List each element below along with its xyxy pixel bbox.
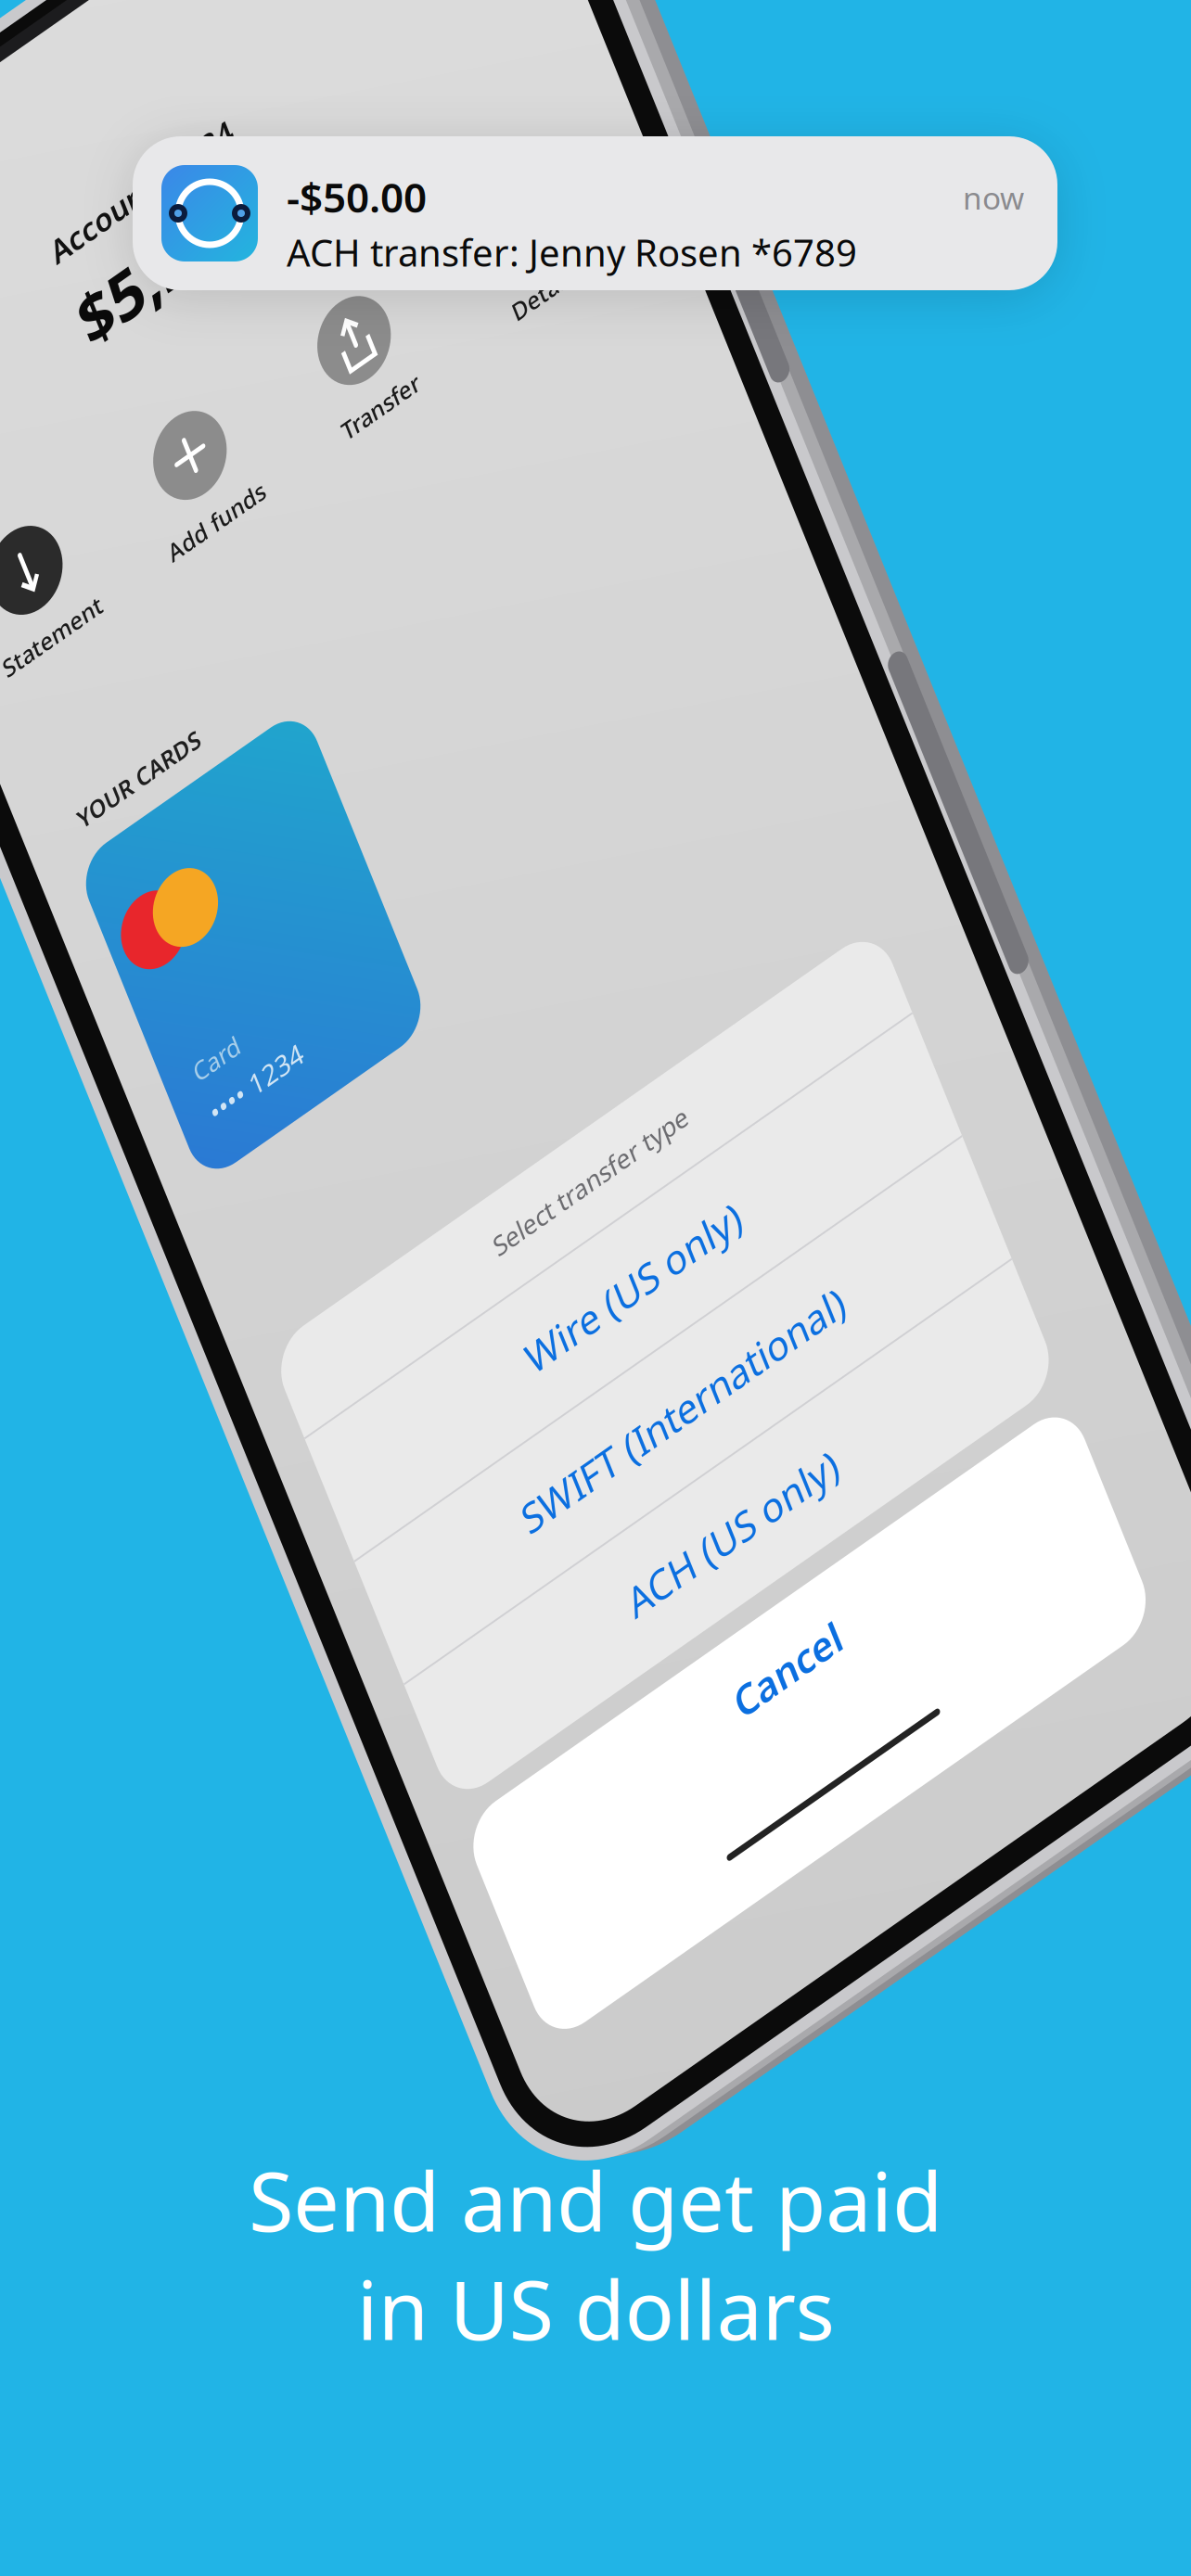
staticText: ACH transfer: Jenny Rosen *6789 [287,228,857,277]
button[interactable]: SWIFT (International) [0,1715,545,1845]
staticText: $5,240.00 [19,470,314,556]
button[interactable]: ACH (US only) [0,1847,545,1978]
staticText: Wire (US only) [45,1621,304,1674]
staticText: SWIFT (International) [0,1754,369,1806]
staticText: -$50.00 [287,170,427,224]
button[interactable]: -$50.00 [133,136,1057,290]
staticText: now [963,177,1024,218]
staticText: Account *1234 [19,416,237,457]
button[interactable]: Transfer [173,646,373,774]
staticText: Send and get paid [249,2146,942,2254]
button[interactable]: Add funds [0,646,173,774]
staticText: Transfer [226,743,319,774]
button[interactable]: Wire (US only) [0,1582,545,1713]
staticText: in US dollars [357,2254,834,2363]
staticText: Select transfer type [57,1516,292,1550]
button[interactable]: Cancel [0,1998,545,2237]
